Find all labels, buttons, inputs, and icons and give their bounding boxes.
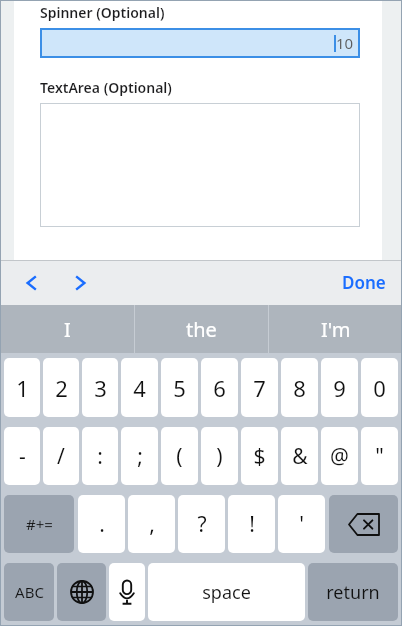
button[interactable]: Next field (64, 266, 98, 300)
button[interactable]: 5 (161, 358, 198, 417)
button[interactable]: @ (321, 427, 358, 485)
button[interactable]: : (82, 427, 118, 485)
staticText: TextArea (Optional) (40, 78, 172, 97)
staticText: ' (299, 510, 304, 539)
staticText: 2 (55, 373, 68, 403)
staticText: 5 (173, 373, 186, 403)
staticText: Spinner (Optional) (40, 3, 165, 22)
staticText: 6 (213, 373, 226, 403)
staticText: Done (342, 271, 386, 294)
button[interactable]: ; (121, 427, 158, 485)
button[interactable]: . (78, 495, 125, 553)
staticText: & (292, 442, 308, 471)
button[interactable]: , (128, 495, 175, 553)
staticText: 10 (336, 33, 354, 53)
staticText: #+= (26, 514, 53, 534)
staticText: ! (249, 510, 255, 539)
button[interactable]: ? (178, 495, 225, 553)
button[interactable]: ( (161, 427, 198, 485)
button[interactable]: 6 (201, 358, 238, 417)
button[interactable]: Previous field (14, 266, 48, 300)
button[interactable]: 7 (241, 358, 278, 417)
button[interactable]: 2 (43, 358, 79, 417)
button[interactable]: 1 (4, 358, 40, 417)
staticText: @ (330, 442, 349, 471)
button[interactable]: - (4, 427, 40, 485)
staticText: I (64, 316, 71, 343)
staticText: the (186, 316, 217, 343)
button[interactable]: the (135, 305, 268, 353)
button[interactable]: ! (228, 495, 275, 553)
button[interactable]: I'm (269, 305, 402, 353)
button[interactable]: Change keyboard language (57, 563, 106, 621)
staticText: space (202, 580, 251, 605)
staticText: . (99, 510, 105, 539)
button[interactable]: space (148, 563, 305, 621)
staticText: 9 (333, 373, 346, 403)
button[interactable]: $ (241, 427, 278, 485)
button[interactable]: ABC (4, 563, 54, 621)
button[interactable]: / (43, 427, 79, 485)
button[interactable]: Delete (329, 495, 398, 553)
staticText: ; (137, 442, 143, 471)
staticText: ABC (15, 582, 44, 602)
button[interactable]: 4 (121, 358, 158, 417)
staticText: - (19, 442, 26, 471)
button[interactable]: #+= (4, 495, 74, 553)
staticText: : (97, 442, 103, 471)
staticText: " (375, 442, 384, 471)
staticText: 8 (293, 373, 306, 403)
button[interactable]: 3 (82, 358, 118, 417)
button[interactable]: return (308, 563, 398, 621)
button[interactable]: ) (201, 427, 238, 485)
button[interactable]: Dictate (109, 563, 145, 621)
button[interactable] (40, 103, 360, 227)
button[interactable]: 0 (361, 358, 398, 417)
staticText: return (326, 580, 380, 605)
staticText: 3 (94, 373, 107, 403)
staticText: $ (253, 442, 266, 471)
staticText: I'm (321, 316, 351, 343)
button[interactable]: & (281, 427, 318, 485)
button[interactable]: I (0, 305, 134, 353)
button[interactable]: 9 (321, 358, 358, 417)
staticText: , (149, 510, 155, 539)
button[interactable]: " (361, 427, 398, 485)
staticText: ) (216, 442, 223, 471)
button[interactable]: ' (278, 495, 325, 553)
staticText: 4 (133, 373, 146, 403)
button[interactable]: 8 (281, 358, 318, 417)
button[interactable]: 10 (40, 28, 360, 58)
staticText: 7 (253, 373, 266, 403)
button[interactable]: Done (342, 271, 386, 294)
staticText: ( (176, 442, 183, 471)
staticText: 0 (373, 373, 386, 403)
staticText: 1 (16, 373, 29, 403)
staticText: ? (197, 510, 207, 539)
staticText: / (57, 442, 65, 471)
